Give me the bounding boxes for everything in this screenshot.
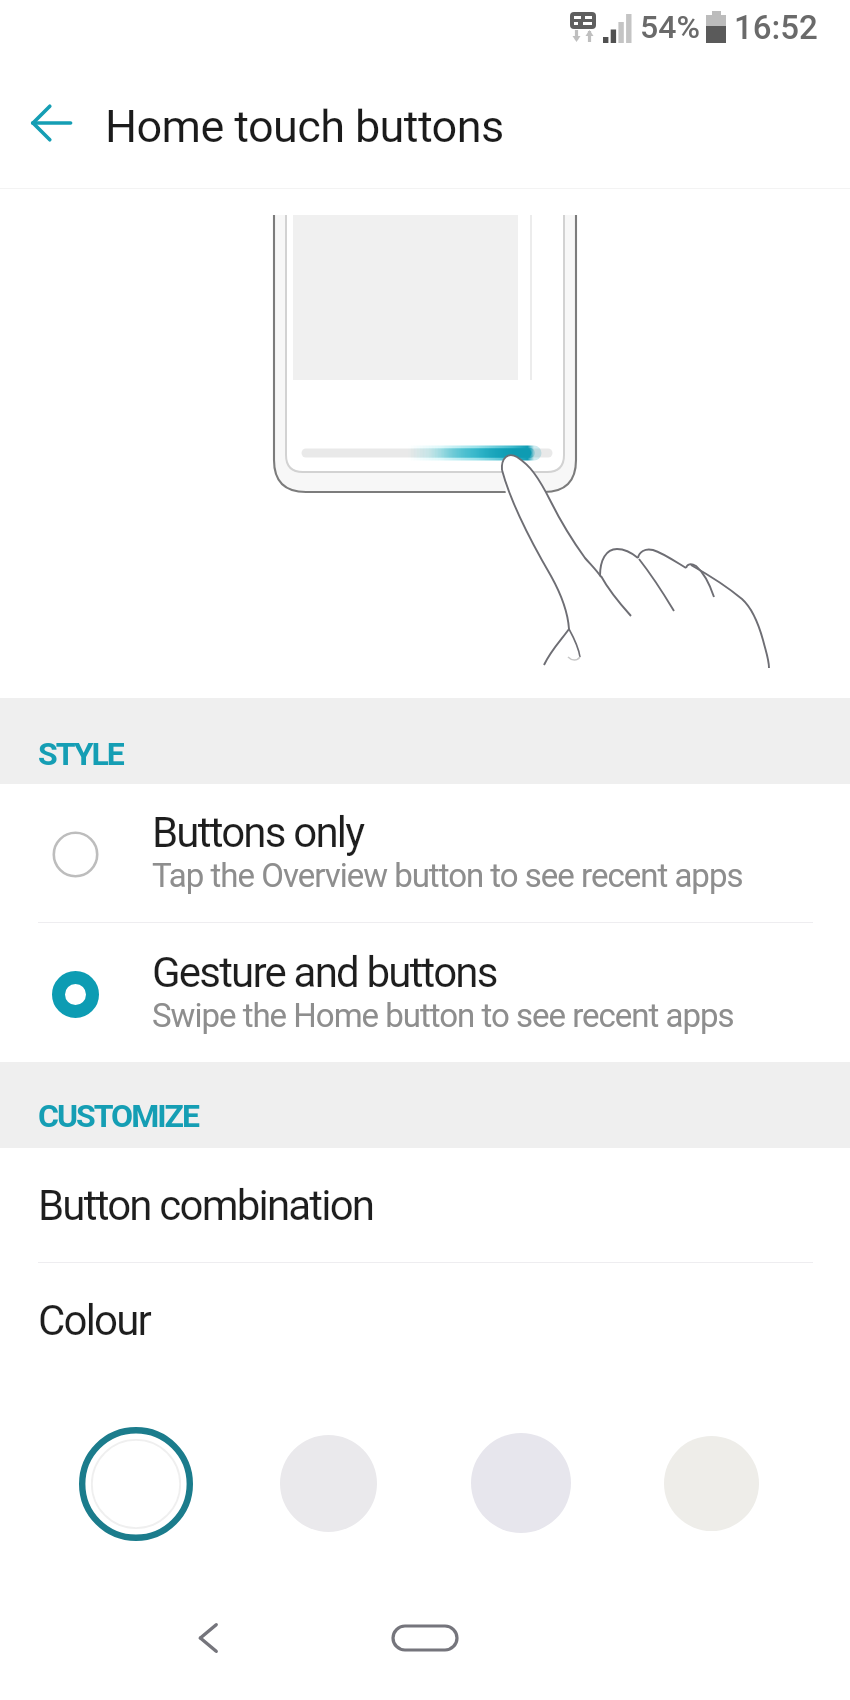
button[interactable]: Colour option: [280, 1435, 377, 1532]
staticText: Home touch buttons: [105, 100, 504, 153]
button[interactable]: Button combination: [0, 1148, 850, 1262]
staticText: Buttons only: [152, 808, 364, 857]
button[interactable]: Buttons only: [0, 783, 850, 922]
button[interactable]: Colour option: [664, 1436, 759, 1531]
staticText: Colour: [38, 1296, 151, 1345]
button[interactable]: Back: [11, 83, 91, 163]
button[interactable]: Gesture and buttons: [0, 923, 850, 1062]
staticText: Swipe the Home button to see recent apps: [152, 996, 734, 1035]
staticText: Tap the Overview button to see recent ap…: [152, 856, 743, 895]
staticText: CUSTOMIZE: [38, 1097, 198, 1135]
staticText: Button combination: [38, 1181, 374, 1230]
staticText: STYLE: [38, 735, 123, 773]
button[interactable]: Back: [178, 1607, 240, 1669]
staticText: 54%: [640, 8, 700, 46]
button[interactable]: White colour: [79, 1427, 193, 1541]
button[interactable]: Colour option: [471, 1433, 571, 1533]
button[interactable]: Colour: [0, 1263, 850, 1377]
button[interactable]: Home: [383, 1616, 467, 1660]
staticText: 16:52: [734, 8, 818, 47]
staticText: Gesture and buttons: [152, 948, 497, 997]
